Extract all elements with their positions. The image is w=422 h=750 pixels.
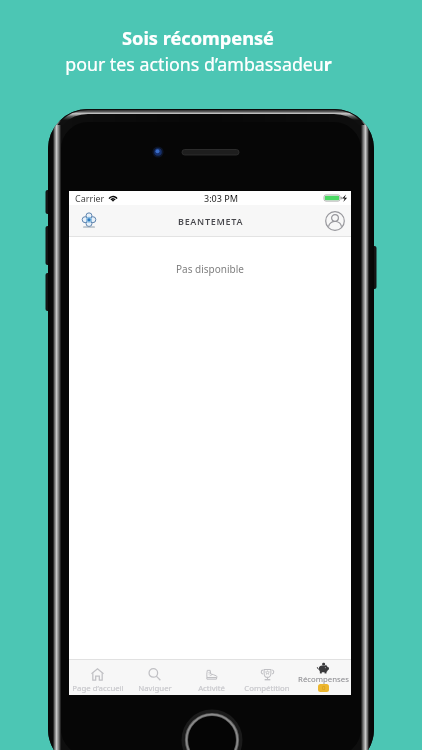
button[interactable]: Récompenses (295, 659, 351, 695)
staticText: 0 (322, 684, 326, 692)
staticText: 3:03 PM (204, 192, 238, 204)
button[interactable]: Logo (78, 210, 100, 232)
staticText: Carrier (75, 192, 105, 204)
staticText: Page d’accueil (72, 683, 124, 694)
button[interactable]: Activité (183, 659, 239, 695)
button[interactable]: Page d’accueil (69, 659, 126, 695)
staticText: BEANTEMETA (178, 215, 244, 227)
staticText: Sois récompensé (122, 26, 274, 51)
staticText: Naviguer (138, 683, 172, 694)
staticText: Compétition (244, 683, 290, 694)
button[interactable]: Profile (323, 209, 347, 233)
staticText: Récompenses (298, 674, 349, 685)
staticText: Pas disponible (176, 262, 244, 276)
staticText: pour tes actions d’ambassadeur (65, 52, 332, 76)
button[interactable]: Naviguer (126, 659, 183, 695)
staticText: Activité (198, 683, 225, 694)
button[interactable]: Compétition (239, 659, 295, 695)
